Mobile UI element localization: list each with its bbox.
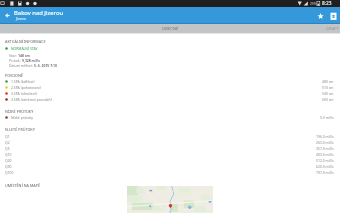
button[interactable]: GRAFY: [326, 24, 339, 33]
staticText: 540 cm: [322, 91, 334, 96]
staticText: 2.SPA (pohotovost): [11, 85, 41, 90]
staticText: AKTUÁLNÍ INFORMACE: [5, 39, 46, 44]
staticText: 5.0 m3/s: [320, 115, 334, 120]
staticText: 797.0 m3/s: [316, 170, 334, 175]
staticText: Datum měření:: [9, 63, 34, 68]
staticText: N-LETÉ PRŮTOKY: [5, 127, 35, 132]
staticText: Q2: [5, 140, 10, 145]
staticText: 263.0 m3/s: [316, 140, 334, 145]
staticText: 8:23: [322, 0, 332, 7]
staticText: Stav:: [9, 53, 18, 58]
staticText: 512.0 m3/s: [316, 158, 334, 163]
staticText: 9,328 m3/s: [22, 58, 40, 63]
staticText: 3.SPA (extrémní povodeň): [11, 97, 52, 102]
staticText: GRAFY: [326, 26, 339, 31]
staticText: 5. 6. 2015 7:10: [34, 63, 57, 68]
staticText: 403.0 m3/s: [316, 152, 334, 157]
staticText: 357.0 m3/s: [316, 146, 334, 151]
staticText: 3.SPA (ohrožení): [11, 91, 37, 96]
staticText: NÍZKÉ PRŮTOKY: [5, 109, 34, 114]
staticText: 1.SPA (bdělost): [11, 79, 35, 84]
staticText: 148 cm: [18, 53, 30, 58]
staticText: 480 cm: [322, 79, 334, 84]
staticText: Q50: [5, 164, 12, 169]
staticText: 600 cm: [322, 97, 334, 102]
staticText: Q1: [5, 134, 10, 139]
button[interactable]: Report: [327, 9, 340, 22]
staticText: Průtok:: [9, 58, 22, 63]
button[interactable]: Favorite: [314, 9, 327, 22]
staticText: NORMÁLNÍ STAV: [11, 46, 38, 51]
staticText: 620.0 m3/s: [316, 164, 334, 169]
staticText: 510 cm: [322, 85, 334, 90]
staticText: Q10: [5, 152, 12, 157]
staticText: Nízké průtoky: [11, 115, 34, 120]
staticText: Q100: [5, 170, 14, 175]
staticText: UMÍSTĚNÍ NA MAPĚ: [5, 183, 41, 188]
staticText: Q5: [5, 146, 10, 151]
staticText: 196.0 m3/s: [316, 134, 334, 139]
button[interactable]: OBECNÉ: [142, 24, 199, 33]
staticText: 29%: [310, 2, 317, 6]
staticText: OBECNÉ: [162, 26, 179, 31]
button[interactable]: Back: [0, 8, 14, 23]
staticText: Q20: [5, 158, 12, 163]
button[interactable]: Map location: [127, 186, 213, 213]
staticText: POVODNĚ: [5, 73, 23, 78]
staticText: Jizera: [16, 16, 26, 21]
staticText: Bakov nad Jizerou: [14, 9, 64, 17]
